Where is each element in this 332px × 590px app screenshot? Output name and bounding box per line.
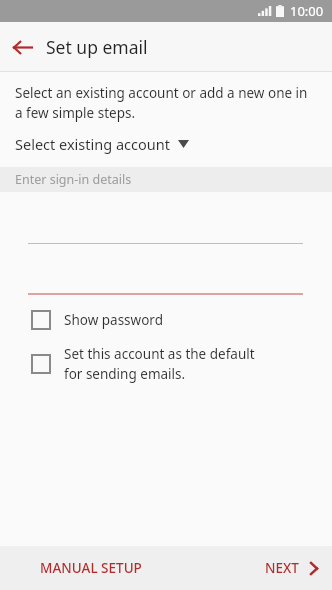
staticText: MANUAL SETUP (40, 559, 142, 577)
button[interactable]: Back (0, 25, 44, 69)
button[interactable]: Set this account as the default for send… (0, 343, 332, 385)
button[interactable]: Show password (0, 309, 332, 331)
button[interactable]: MANUAL SETUP (0, 549, 156, 587)
staticText: Show password (64, 311, 163, 329)
staticText: Select an existing account or add a new … (15, 84, 308, 122)
button[interactable] (0, 192, 332, 244)
button[interactable] (0, 244, 332, 295)
staticText: NEXT (265, 559, 299, 577)
button[interactable]: Select existing account (0, 132, 332, 158)
staticText: Set this account as the default for send… (64, 345, 255, 383)
staticText: Enter sign-in details (15, 171, 132, 188)
staticText: 10:00 (290, 2, 324, 20)
staticText: Set up email (46, 35, 148, 59)
staticText: Select existing account (15, 134, 170, 154)
button[interactable]: NEXT (251, 549, 332, 587)
